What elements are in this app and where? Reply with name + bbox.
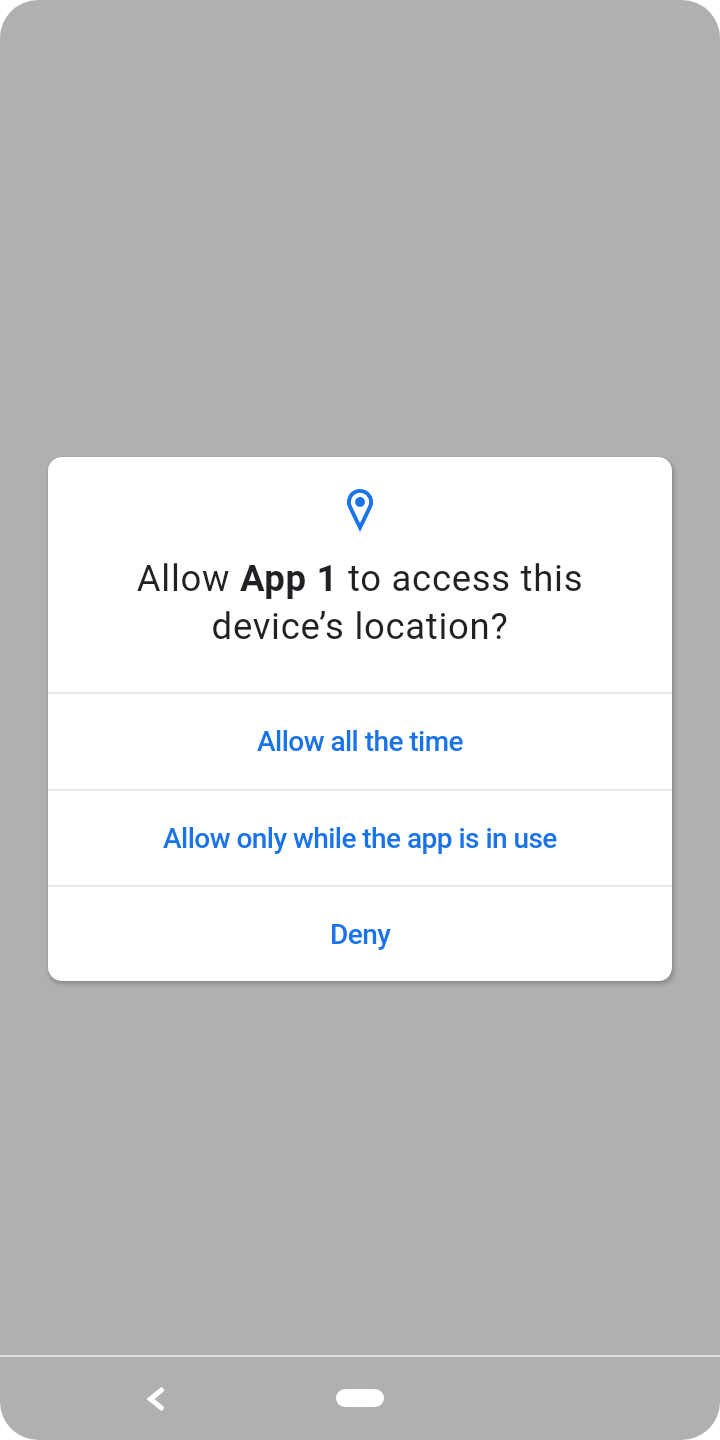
button[interactable]: Allow all the time [48, 694, 672, 789]
staticText: Allow only while the app is in use [163, 822, 557, 855]
button[interactable] [336, 1389, 384, 1407]
staticText: Allow all the time [257, 725, 464, 758]
staticText: Allow App 1 to access this device’s loca… [48, 557, 672, 648]
staticText: Deny [330, 918, 391, 951]
button[interactable] [132, 1375, 180, 1423]
button[interactable]: Deny [48, 887, 672, 981]
button[interactable]: Allow only while the app is in use [48, 791, 672, 885]
